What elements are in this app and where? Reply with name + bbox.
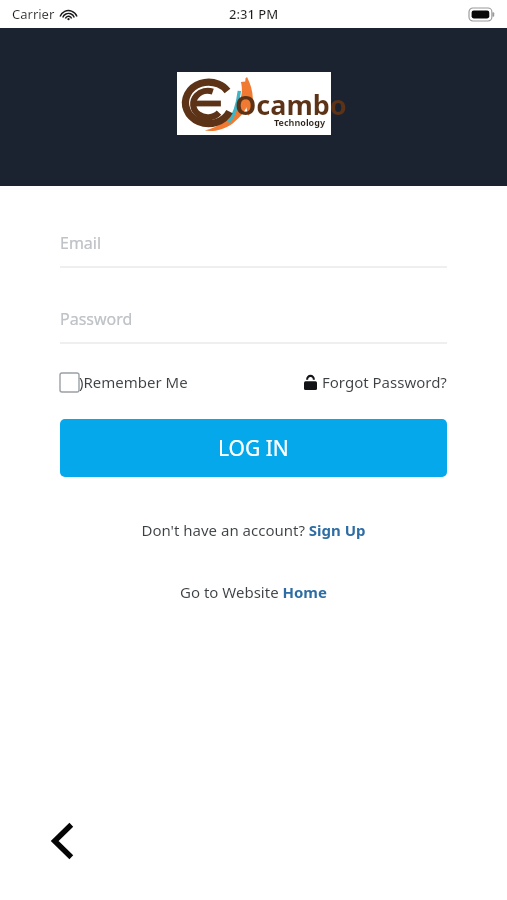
staticText: LOG IN [218, 434, 289, 463]
staticText: Carrier [12, 5, 55, 23]
button[interactable]: Email [60, 232, 447, 268]
button[interactable]: LOG IN [60, 419, 447, 477]
staticText: Password [60, 308, 133, 330]
button[interactable]: Don't have an account? Sign Up [60, 520, 447, 540]
button[interactable]: Go to Website Home [60, 582, 447, 602]
staticText: Technology [274, 116, 326, 128]
staticText: Go to Website Home [180, 582, 327, 602]
staticText: Email [60, 232, 102, 254]
staticText: 2:31 PM [229, 5, 279, 23]
button[interactable]: )Remember Me [60, 372, 188, 392]
button[interactable]: Back [40, 818, 86, 864]
button[interactable]: Password [60, 308, 447, 344]
staticText: Ocambo [235, 86, 347, 123]
staticText: Don't have an account? Sign Up [141, 520, 366, 540]
staticText: )Remember Me [79, 372, 188, 392]
staticText: Forgot Password? [322, 372, 447, 392]
button[interactable]: Forgot Password? [304, 372, 447, 392]
